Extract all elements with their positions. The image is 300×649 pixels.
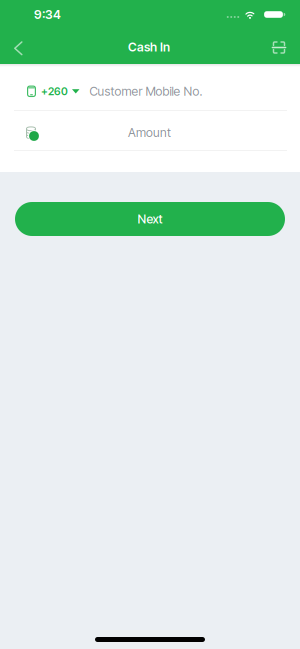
button[interactable]: Back [0, 29, 30, 64]
staticText: 9:34 [34, 7, 61, 22]
staticText: Amount [128, 125, 171, 140]
staticText: Cash In [128, 40, 170, 54]
staticText: Customer Mobile No. [89, 84, 202, 99]
staticText: Next [137, 212, 162, 226]
button[interactable]: Scan QR Code [266, 34, 292, 60]
staticText: +260 [41, 85, 68, 98]
button[interactable]: Next [15, 202, 285, 236]
button[interactable]: Country code +260 [36, 85, 79, 98]
